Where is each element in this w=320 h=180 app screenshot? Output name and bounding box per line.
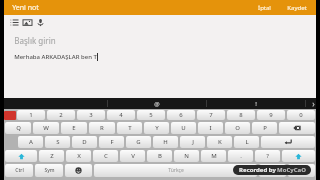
button[interactable]: R bbox=[89, 122, 115, 134]
button[interactable]: J bbox=[180, 136, 205, 148]
button[interactable]: More suggestions bbox=[306, 98, 320, 109]
button[interactable]: N bbox=[174, 150, 199, 162]
button[interactable]: Space bbox=[94, 164, 257, 177]
staticText: I bbox=[209, 124, 212, 132]
button[interactable]: L bbox=[234, 136, 259, 148]
staticText: X bbox=[77, 152, 81, 160]
button[interactable]: İptal bbox=[255, 2, 274, 14]
staticText: Y bbox=[155, 124, 159, 132]
button[interactable]: Ctrl bbox=[5, 164, 33, 177]
button[interactable]: 7 bbox=[197, 110, 225, 120]
button[interactable]: , bbox=[259, 164, 286, 177]
staticText: D bbox=[82, 138, 87, 146]
staticText: Başlık girin bbox=[14, 35, 56, 46]
button[interactable]: Keyboard settings bbox=[0, 98, 10, 109]
button[interactable]: 4 bbox=[107, 110, 135, 120]
button[interactable]: D bbox=[72, 136, 97, 148]
staticText: V bbox=[131, 152, 135, 160]
button[interactable]: Voice bbox=[34, 16, 47, 29]
staticText: A bbox=[29, 138, 33, 146]
button[interactable]: 1 bbox=[17, 110, 45, 120]
button[interactable]: H bbox=[153, 136, 178, 148]
staticText: S bbox=[56, 138, 60, 146]
button[interactable]: Image bbox=[21, 16, 34, 29]
button[interactable]: T bbox=[117, 122, 142, 134]
button[interactable]: 9 bbox=[257, 110, 285, 120]
staticText: MoCyCaO bbox=[277, 166, 306, 174]
staticText: Türkçe bbox=[168, 167, 184, 174]
staticText: 5 bbox=[149, 111, 153, 119]
staticText: Sym bbox=[44, 167, 55, 174]
button[interactable]: Emoji bbox=[65, 164, 92, 177]
staticText: N bbox=[184, 152, 189, 160]
button[interactable]: 6 bbox=[167, 110, 195, 120]
button[interactable]: V bbox=[120, 150, 145, 162]
staticText: Yeni not bbox=[12, 3, 39, 13]
button[interactable]: Kaydet bbox=[284, 2, 310, 14]
staticText: 9 bbox=[269, 111, 273, 119]
button[interactable]: Y bbox=[144, 122, 169, 134]
button[interactable]: F bbox=[99, 136, 124, 148]
staticText: 2 bbox=[59, 111, 63, 119]
button[interactable]: Backspace bbox=[279, 122, 315, 134]
staticText: B bbox=[158, 152, 162, 160]
button[interactable]: Enter bbox=[261, 136, 315, 148]
staticText: 0 bbox=[299, 111, 303, 119]
staticText: O bbox=[235, 124, 240, 132]
button[interactable]: B bbox=[147, 150, 172, 162]
staticText: 8 bbox=[239, 111, 243, 119]
button[interactable]: Q bbox=[5, 122, 31, 134]
button[interactable]: X bbox=[66, 150, 91, 162]
staticText: T bbox=[128, 124, 132, 132]
staticText: . bbox=[240, 152, 242, 160]
staticText: P bbox=[263, 124, 267, 132]
staticText: ? bbox=[266, 152, 269, 160]
staticText: H bbox=[163, 138, 168, 146]
staticText: M bbox=[211, 152, 217, 160]
button[interactable]: C bbox=[93, 150, 118, 162]
staticText: J bbox=[192, 138, 194, 146]
button[interactable]: K bbox=[207, 136, 232, 148]
button[interactable]: 5 bbox=[137, 110, 165, 120]
button[interactable]: ? bbox=[255, 150, 280, 162]
staticText: Ctrl bbox=[15, 167, 24, 174]
button[interactable]: M bbox=[201, 150, 226, 162]
button[interactable]: 2 bbox=[47, 110, 75, 120]
button[interactable]: Z bbox=[39, 150, 64, 162]
button[interactable]: Shift bbox=[5, 150, 37, 162]
staticText: E bbox=[72, 124, 76, 132]
staticText: Recorded by bbox=[238, 166, 277, 174]
staticText: 7 bbox=[209, 111, 213, 119]
staticText: G bbox=[136, 138, 141, 146]
button[interactable]: I bbox=[198, 122, 223, 134]
staticText: L bbox=[245, 138, 249, 146]
button[interactable]: List bbox=[8, 16, 21, 29]
button[interactable]: Shift bbox=[282, 150, 315, 162]
button[interactable]: O bbox=[225, 122, 250, 134]
staticText: C bbox=[104, 152, 108, 160]
button[interactable]: S bbox=[45, 136, 70, 148]
staticText: @ bbox=[154, 100, 160, 108]
button[interactable]: 8 bbox=[227, 110, 255, 120]
staticText: R bbox=[100, 124, 104, 132]
button[interactable]: ! bbox=[207, 98, 305, 109]
staticText: 6 bbox=[179, 111, 183, 119]
button[interactable]: Sym bbox=[35, 164, 63, 177]
button[interactable]: A bbox=[18, 136, 43, 148]
button[interactable]: Keyboard app bbox=[4, 111, 16, 120]
button[interactable]: E bbox=[61, 122, 87, 134]
staticText: İptal bbox=[258, 4, 271, 12]
button[interactable]: G bbox=[126, 136, 151, 148]
button[interactable]: 3 bbox=[77, 110, 105, 120]
staticText: 1 bbox=[29, 111, 33, 119]
button[interactable]: . bbox=[288, 164, 315, 177]
button[interactable]: . bbox=[228, 150, 253, 162]
button[interactable]: W bbox=[33, 122, 59, 134]
staticText: Q bbox=[16, 124, 21, 132]
button[interactable]: 0 bbox=[287, 110, 315, 120]
button[interactable]: U bbox=[171, 122, 196, 134]
staticText: W bbox=[43, 124, 49, 132]
button[interactable]: @ bbox=[108, 98, 206, 109]
button[interactable]: P bbox=[252, 122, 277, 134]
